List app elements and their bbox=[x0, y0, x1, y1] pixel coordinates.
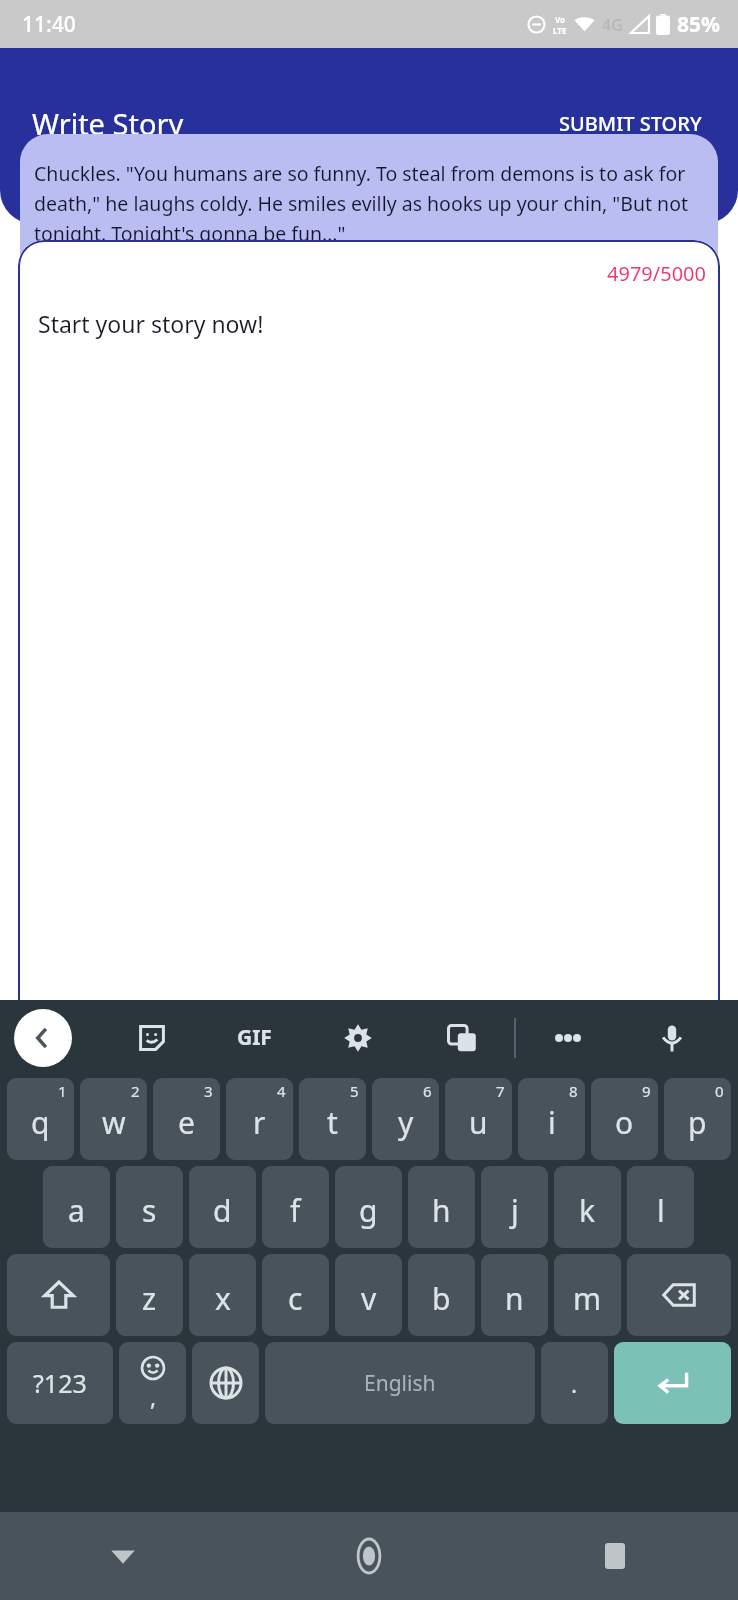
staticText: Chuckles. "You humans are so funny. To s… bbox=[34, 160, 702, 246]
staticText: b bbox=[432, 1278, 451, 1319]
staticText: , bbox=[150, 1381, 157, 1412]
staticText: 4979/5000 bbox=[607, 260, 706, 287]
staticText: SUBMIT STORY bbox=[559, 110, 702, 137]
button[interactable]: ?123 bbox=[7, 1342, 113, 1424]
staticText: d bbox=[213, 1190, 232, 1231]
staticText: t bbox=[327, 1102, 338, 1143]
staticText: c bbox=[288, 1278, 303, 1319]
staticText: GIF bbox=[237, 1023, 272, 1052]
staticText: j bbox=[511, 1190, 519, 1231]
button[interactable]: Chuckles. "You humans are so funny. To s… bbox=[20, 134, 718, 334]
staticText: i bbox=[548, 1102, 556, 1143]
button[interactable]: j bbox=[481, 1166, 548, 1248]
button[interactable]: Shift bbox=[7, 1254, 110, 1336]
button[interactable]: h bbox=[408, 1166, 475, 1248]
button[interactable]: i bbox=[518, 1078, 585, 1160]
button[interactable]: o bbox=[591, 1078, 658, 1160]
button[interactable]: Back bbox=[0, 1512, 246, 1600]
staticText: 5 bbox=[350, 1081, 359, 1101]
staticText: p bbox=[688, 1102, 707, 1143]
staticText: q bbox=[31, 1102, 50, 1143]
button[interactable]: Settings bbox=[306, 1000, 410, 1075]
button[interactable]: f bbox=[262, 1166, 329, 1248]
button[interactable]: t bbox=[299, 1078, 366, 1160]
button[interactable]: Enter bbox=[614, 1342, 731, 1424]
staticText: m bbox=[573, 1278, 602, 1319]
staticText: English bbox=[364, 1369, 436, 1398]
staticText: z bbox=[142, 1278, 157, 1319]
button[interactable]: p bbox=[664, 1078, 731, 1160]
button[interactable]: m bbox=[554, 1254, 621, 1336]
staticText: l bbox=[657, 1190, 665, 1231]
staticText: w bbox=[102, 1102, 126, 1143]
button[interactable]: z bbox=[116, 1254, 183, 1336]
button[interactable]: x bbox=[189, 1254, 256, 1336]
staticText: . bbox=[571, 1368, 578, 1399]
button[interactable]: k bbox=[554, 1166, 621, 1248]
staticText: o bbox=[615, 1102, 634, 1143]
button[interactable]: Backspace bbox=[627, 1254, 731, 1336]
button[interactable]: y bbox=[372, 1078, 439, 1160]
button[interactable]: GIF bbox=[203, 1000, 306, 1075]
button[interactable]: 4979/5000 bbox=[18, 240, 720, 1192]
staticText: a bbox=[68, 1190, 85, 1231]
button[interactable]: Stickers bbox=[100, 1000, 203, 1075]
staticText: Vo bbox=[555, 14, 566, 25]
button[interactable]: More options bbox=[516, 1000, 620, 1075]
staticText: 7 bbox=[496, 1081, 505, 1101]
staticText: 2 bbox=[131, 1081, 140, 1101]
button[interactable]: u bbox=[445, 1078, 512, 1160]
button[interactable]: Change language bbox=[192, 1342, 259, 1424]
staticText: 8 bbox=[569, 1081, 578, 1101]
staticText: n bbox=[505, 1278, 524, 1319]
staticText: 9 bbox=[642, 1081, 651, 1101]
staticText: 85% bbox=[677, 10, 720, 39]
staticText: ?123 bbox=[33, 1366, 87, 1400]
staticText: 1 bbox=[58, 1081, 67, 1101]
staticText: Write Story bbox=[32, 104, 184, 143]
staticText: s bbox=[142, 1190, 157, 1231]
button[interactable]: e bbox=[153, 1078, 220, 1160]
button[interactable]: n bbox=[481, 1254, 548, 1336]
button[interactable]: v bbox=[335, 1254, 402, 1336]
staticText: 0 bbox=[715, 1081, 724, 1101]
button[interactable]: . bbox=[541, 1342, 608, 1424]
button[interactable]: w bbox=[80, 1078, 147, 1160]
staticText: Start your story now! bbox=[38, 308, 264, 339]
staticText: g bbox=[359, 1190, 378, 1231]
staticText: 11:40 bbox=[22, 10, 76, 39]
button[interactable]: a bbox=[43, 1166, 110, 1248]
staticText: r bbox=[253, 1102, 266, 1143]
staticText: f bbox=[290, 1190, 301, 1231]
staticText: 6 bbox=[423, 1081, 432, 1101]
button[interactable]: Back bbox=[14, 1009, 72, 1067]
staticText: u bbox=[469, 1102, 488, 1143]
staticText: v bbox=[361, 1278, 377, 1319]
button[interactable]: Home bbox=[246, 1512, 492, 1600]
button[interactable]: SUBMIT STORY bbox=[555, 102, 706, 145]
button[interactable]: d bbox=[189, 1166, 256, 1248]
button[interactable]: English bbox=[265, 1342, 535, 1424]
button[interactable]: s bbox=[116, 1166, 183, 1248]
staticText: 4 bbox=[277, 1081, 286, 1101]
staticText: x bbox=[215, 1278, 231, 1319]
staticText: h bbox=[432, 1190, 451, 1231]
button[interactable]: g bbox=[335, 1166, 402, 1248]
staticText: k bbox=[579, 1190, 596, 1231]
button[interactable]: Translate bbox=[410, 1000, 514, 1075]
button[interactable]: Emoji and comma bbox=[119, 1342, 186, 1424]
staticText: LTE bbox=[553, 25, 567, 36]
button[interactable]: r bbox=[226, 1078, 293, 1160]
staticText: y bbox=[398, 1102, 414, 1143]
button[interactable]: Recent apps bbox=[492, 1512, 738, 1600]
button[interactable]: l bbox=[627, 1166, 694, 1248]
staticText: 4G bbox=[602, 14, 623, 36]
staticText: 3 bbox=[204, 1081, 213, 1101]
button[interactable]: c bbox=[262, 1254, 329, 1336]
button[interactable]: Voice input bbox=[620, 1000, 724, 1075]
button[interactable]: q bbox=[7, 1078, 74, 1160]
button[interactable]: b bbox=[408, 1254, 475, 1336]
staticText: e bbox=[178, 1102, 195, 1143]
